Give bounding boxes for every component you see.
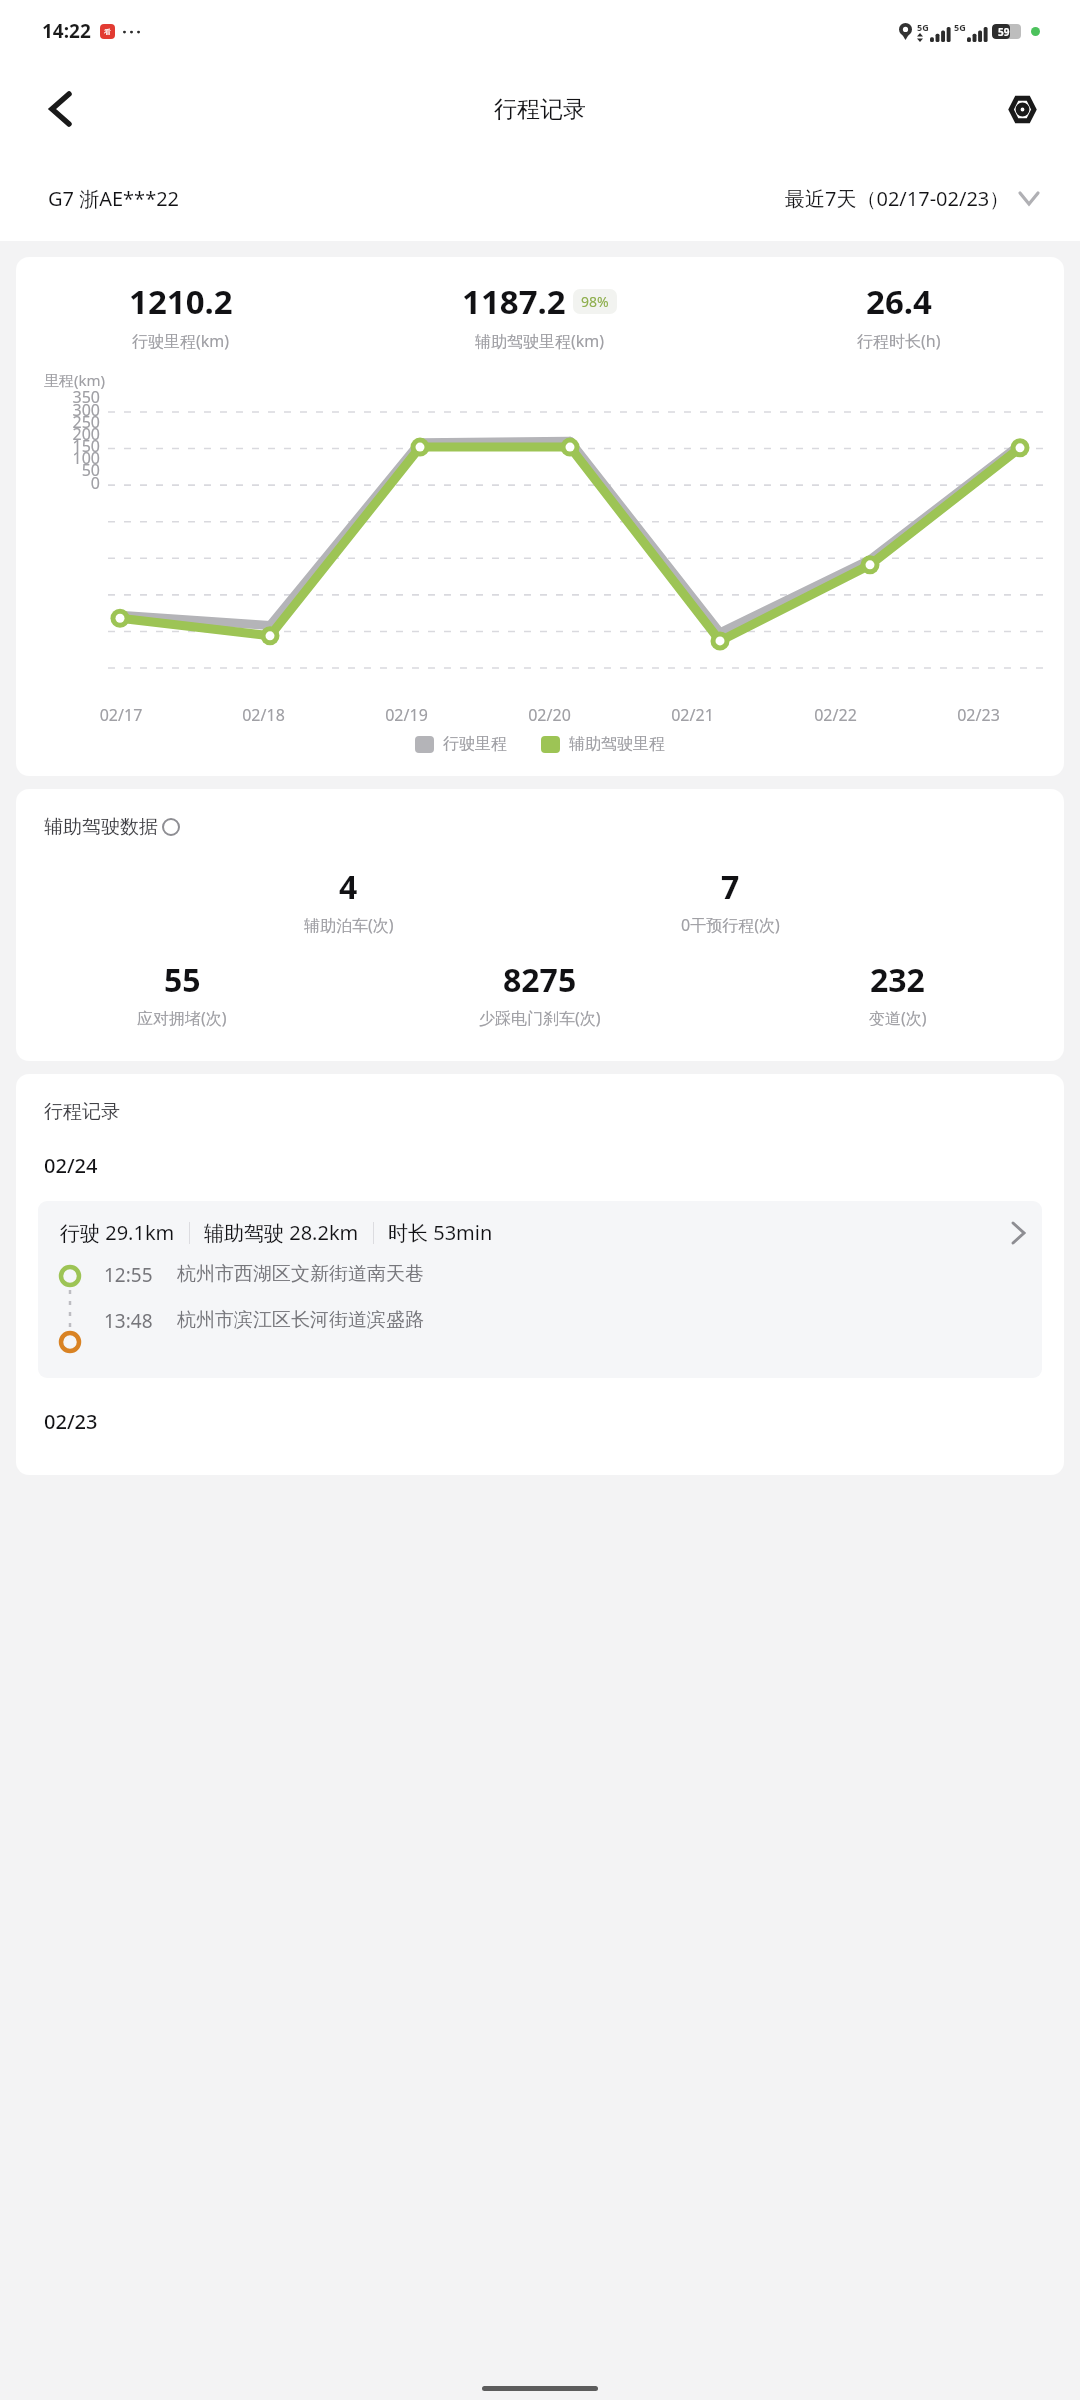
staticText: 辅助泊车(次) bbox=[304, 914, 394, 936]
staticText: 02/22 bbox=[764, 704, 907, 726]
staticText: 59 bbox=[998, 25, 1010, 39]
staticText: 7 bbox=[721, 865, 740, 909]
button[interactable]: 设置 bbox=[996, 83, 1048, 135]
button[interactable]: 1210.2 bbox=[16, 257, 1064, 776]
staticText: 时长 53min bbox=[388, 1219, 493, 1246]
staticText: 8275 bbox=[503, 958, 577, 1002]
staticText: 100 bbox=[16, 447, 100, 469]
staticText: 02/23 bbox=[907, 704, 1050, 726]
staticText: 里程(km) bbox=[44, 370, 106, 390]
staticText: 02/20 bbox=[478, 704, 621, 726]
staticText: 少踩电门刹车(次) bbox=[479, 1007, 601, 1029]
staticText: 应对拥堵(次) bbox=[137, 1007, 227, 1029]
button[interactable]: 返回 bbox=[34, 83, 86, 135]
staticText: 0干预行程(次) bbox=[681, 914, 780, 936]
staticText: 232 bbox=[870, 958, 925, 1002]
staticText: 辅助驾驶 28.2km bbox=[204, 1219, 359, 1246]
button[interactable]: 辅助驾驶数据 bbox=[16, 789, 1064, 1061]
staticText: 5G bbox=[917, 21, 929, 33]
staticText: 辅助驾驶里程 bbox=[569, 734, 665, 754]
staticText: 12:55 bbox=[104, 1262, 153, 1284]
staticText: 50 bbox=[16, 459, 100, 481]
staticText: 02/21 bbox=[621, 704, 764, 726]
staticText: 杭州市西湖区文新街道南天巷 bbox=[177, 1262, 424, 1284]
staticText: 看 bbox=[104, 27, 111, 36]
staticText: 200 bbox=[16, 423, 100, 445]
staticText: 行驶里程 bbox=[443, 734, 507, 754]
staticText: 0 bbox=[16, 472, 100, 494]
button[interactable]: 行驶 29.1km bbox=[38, 1201, 1042, 1378]
staticText: 1210.2 bbox=[129, 279, 233, 324]
staticText: 辅助驾驶里程(km) bbox=[475, 330, 605, 352]
staticText: 5G bbox=[954, 21, 966, 33]
button[interactable]: G7 浙AE***22 bbox=[48, 185, 180, 212]
button[interactable]: 最近7天（02/17-02/23） bbox=[785, 185, 1038, 212]
staticText: 1187.2 bbox=[462, 279, 566, 324]
staticText: 14:22 bbox=[42, 18, 91, 44]
staticText: 行程时长(h) bbox=[857, 330, 941, 352]
staticText: 350 bbox=[16, 386, 100, 408]
staticText: 变道(次) bbox=[869, 1007, 927, 1029]
staticText: 杭州市滨江区长河街道滨盛路 bbox=[177, 1308, 424, 1330]
staticText: 02/23 bbox=[44, 1408, 98, 1435]
staticText: 02/24 bbox=[44, 1152, 98, 1179]
staticText: 行驶里程(km) bbox=[132, 330, 230, 352]
staticText: 300 bbox=[16, 399, 100, 421]
staticText: 4 bbox=[339, 865, 358, 909]
staticText: 02/18 bbox=[192, 704, 335, 726]
other: 说明 bbox=[162, 818, 180, 836]
staticText: 55 bbox=[164, 958, 201, 1002]
button[interactable]: 辅助驾驶数据 bbox=[44, 815, 180, 839]
staticText: 26.4 bbox=[866, 279, 932, 324]
staticText: 250 bbox=[16, 411, 100, 433]
staticText: 02/17 bbox=[50, 704, 192, 726]
staticText: 行程记录 bbox=[44, 1100, 120, 1124]
staticText: 行程记录 bbox=[494, 95, 586, 124]
staticText: 行驶 29.1km bbox=[60, 1219, 175, 1246]
staticText: 最近7天（02/17-02/23） bbox=[785, 185, 1010, 212]
staticText: 02/19 bbox=[335, 704, 478, 726]
staticText: 辅助驾驶数据 bbox=[44, 815, 158, 839]
staticText: 13:48 bbox=[104, 1308, 153, 1330]
staticText: 150 bbox=[16, 435, 100, 457]
staticText: 98% bbox=[581, 292, 609, 311]
